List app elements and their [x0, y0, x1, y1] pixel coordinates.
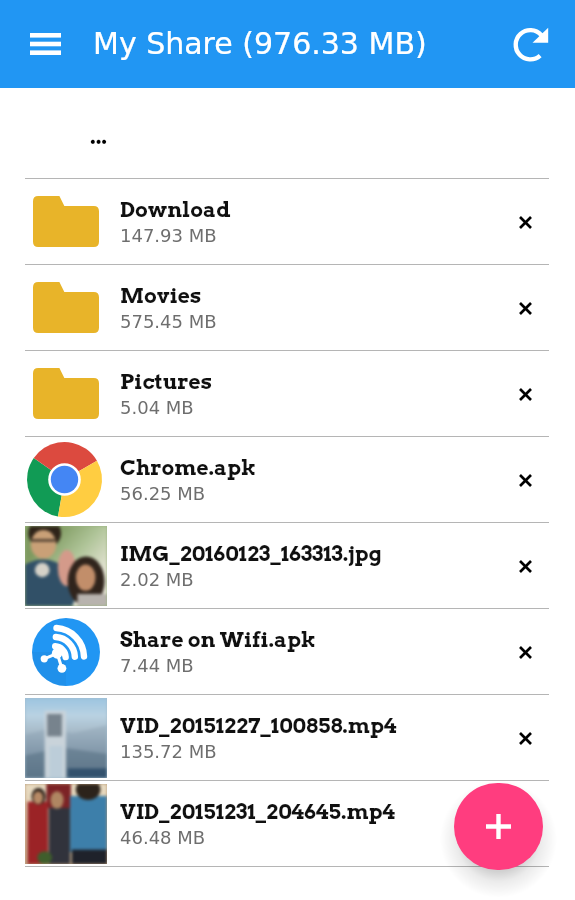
staticText: Share on Wifi.apk [120, 627, 316, 652]
staticText: Chrome.apk [120, 455, 257, 480]
button[interactable]: Pictures [25, 351, 549, 436]
button[interactable]: Remove IMG_20160123_163313.jpg [501, 523, 549, 608]
staticText: 147.93 MB [120, 225, 217, 246]
staticText: VID_20151231_204645.mp4 [120, 799, 396, 824]
button[interactable]: Add [454, 783, 543, 870]
button[interactable]: Movies [25, 265, 549, 350]
button[interactable]: Refresh [505, 16, 561, 72]
button[interactable]: IMG_20160123_163313.jpg [25, 523, 549, 608]
staticText: 135.72 MB [120, 741, 217, 762]
button[interactable]: VID_20151227_100858.mp4 [25, 695, 549, 780]
staticText: 5.04 MB [120, 397, 194, 418]
button[interactable]: Remove Movies [501, 265, 549, 350]
button[interactable]: Download [25, 179, 549, 264]
staticText: 2.02 MB [120, 569, 194, 590]
button[interactable]: Remove VID_20151227_100858.mp4 [501, 695, 549, 780]
staticText: Download [120, 197, 231, 222]
button[interactable]: Remove Download [501, 179, 549, 264]
button[interactable]: Remove Pictures [501, 351, 549, 436]
button[interactable]: VID_20151231_204645.mp4 [25, 781, 549, 866]
staticText: 575.45 MB [120, 311, 217, 332]
button[interactable]: Share on Wifi.apk [25, 609, 549, 694]
staticText: 46.48 MB [120, 827, 206, 848]
button[interactable]: ... [25, 88, 549, 178]
button[interactable]: Menu [17, 16, 73, 72]
button[interactable]: Remove Chrome.apk [501, 437, 549, 522]
button[interactable]: Remove VID_20151231_204645.mp4 [501, 781, 549, 866]
staticText: VID_20151227_100858.mp4 [120, 713, 397, 738]
staticText: My Share (976.33 MB) [93, 26, 427, 61]
staticText: 7.44 MB [120, 655, 194, 676]
staticText: ... [90, 123, 108, 150]
button[interactable]: Chrome.apk [25, 437, 549, 522]
staticText: 56.25 MB [120, 483, 206, 504]
staticText: Pictures [120, 369, 213, 394]
staticText: IMG_20160123_163313.jpg [120, 541, 382, 566]
button[interactable]: Remove Share on Wifi.apk [501, 609, 549, 694]
staticText: Movies [120, 283, 202, 308]
